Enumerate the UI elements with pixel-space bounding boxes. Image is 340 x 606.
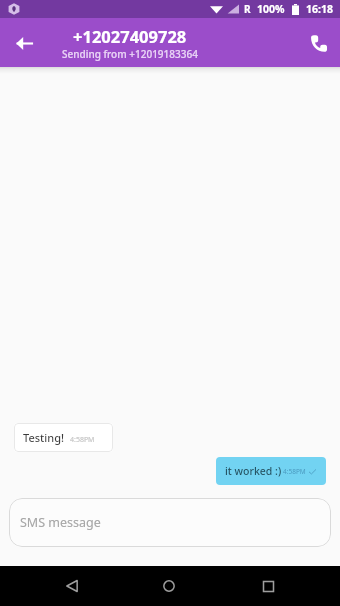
staticText: SMS message (20, 514, 101, 531)
button[interactable]: Testing! (14, 423, 113, 452)
staticText: +12027409728 (73, 25, 187, 47)
staticText: Testing! (23, 430, 64, 445)
button[interactable]: Call (296, 21, 338, 65)
button[interactable]: Home (149, 566, 189, 606)
button[interactable]: Back (4, 21, 44, 65)
staticText: it worked :) (225, 464, 282, 478)
staticText: 4:58PM (283, 467, 306, 476)
button[interactable]: it worked :) (216, 457, 326, 485)
button[interactable]: Recents (248, 566, 288, 606)
staticText: 100% (257, 2, 285, 16)
staticText: 16:18 (306, 2, 333, 16)
staticText: 4:58PM (70, 435, 95, 445)
staticText: Sending from +12019183364 (62, 47, 198, 61)
button[interactable]: Back (52, 566, 92, 606)
staticText: R (244, 2, 251, 16)
button[interactable]: SMS message (9, 498, 331, 547)
